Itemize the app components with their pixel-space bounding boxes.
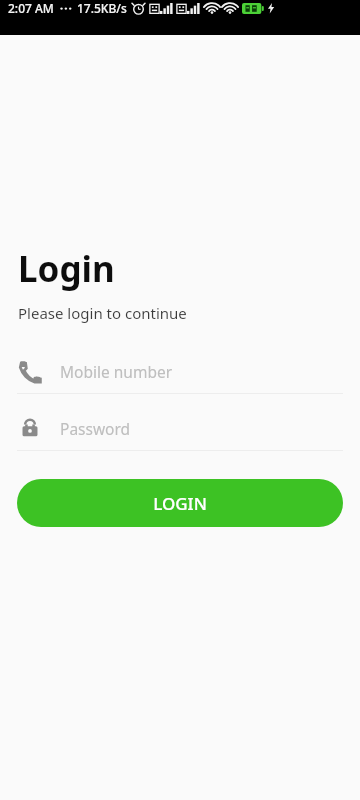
other: Password — [18, 416, 42, 440]
staticText: LOGIN — [153, 492, 207, 515]
button[interactable]: Password — [0, 406, 360, 450]
staticText: 17.5KB/s — [77, 0, 127, 16]
other: Mobile number — [18, 359, 42, 383]
staticText: 2:07 AM — [8, 0, 54, 16]
staticText: Please login to continue — [18, 303, 187, 323]
button[interactable]: LOGIN — [17, 479, 343, 527]
staticText: Mobile number — [60, 361, 173, 382]
staticText: Password — [60, 418, 131, 439]
button[interactable]: Mobile number — [0, 349, 360, 393]
staticText: Login — [18, 245, 115, 293]
